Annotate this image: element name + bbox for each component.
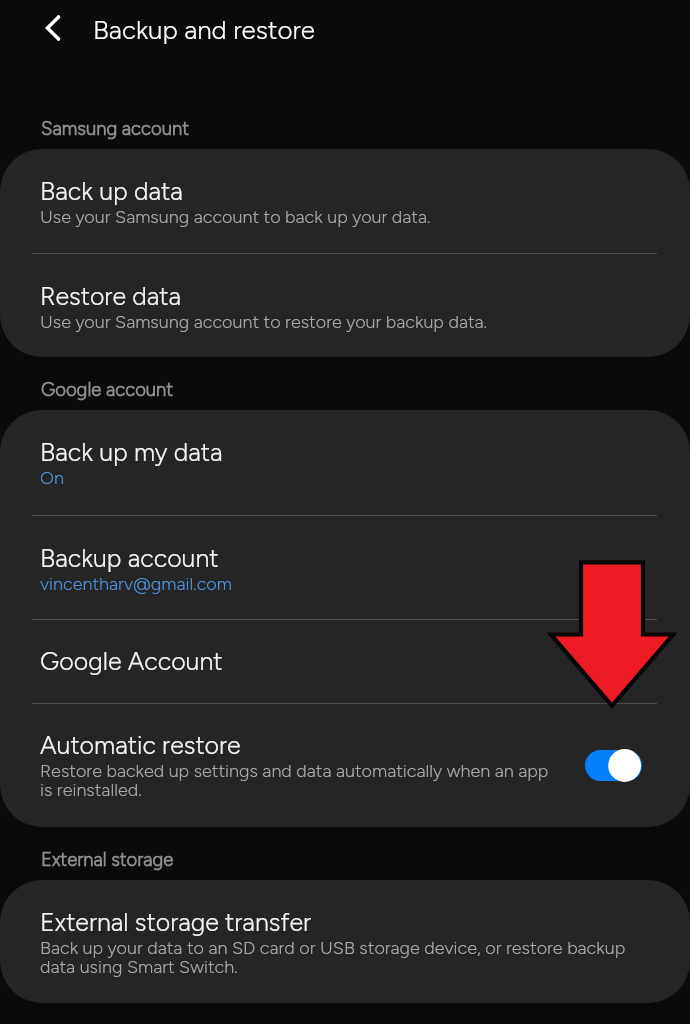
staticText: Restore data (40, 281, 182, 311)
button[interactable]: Navigate up (26, 1, 80, 55)
button[interactable]: Google Account (0, 620, 690, 703)
staticText: Use your Samsung account to back up your… (40, 206, 431, 228)
staticText: External storage (41, 848, 174, 870)
staticText: vincentharv@gmail.com (40, 573, 232, 595)
staticText: Backup and restore (93, 14, 315, 45)
staticText: On (40, 467, 64, 489)
staticText: Back up data (40, 176, 183, 206)
button[interactable]: Automatic restore, on (585, 748, 642, 783)
button[interactable]: Backup account (0, 516, 690, 619)
staticText: Back up your data to an SD card or USB s… (40, 937, 642, 978)
button[interactable]: Back up my data (0, 410, 690, 515)
staticText: Back up my data (40, 437, 223, 467)
staticText: Automatic restore (40, 730, 241, 760)
staticText: Samsung account (41, 117, 190, 139)
staticText: Restore backed up settings and data auto… (40, 760, 555, 801)
button[interactable]: External storage transfer (0, 880, 690, 1003)
staticText: Use your Samsung account to restore your… (40, 311, 488, 333)
button[interactable]: Restore data (0, 254, 690, 357)
staticText: Google account (41, 378, 174, 400)
staticText: Google Account (40, 646, 223, 676)
button[interactable]: Back up data (0, 149, 690, 253)
staticText: External storage transfer (40, 907, 312, 937)
staticText: Backup account (40, 543, 219, 573)
button[interactable]: Automatic restore (0, 704, 690, 827)
